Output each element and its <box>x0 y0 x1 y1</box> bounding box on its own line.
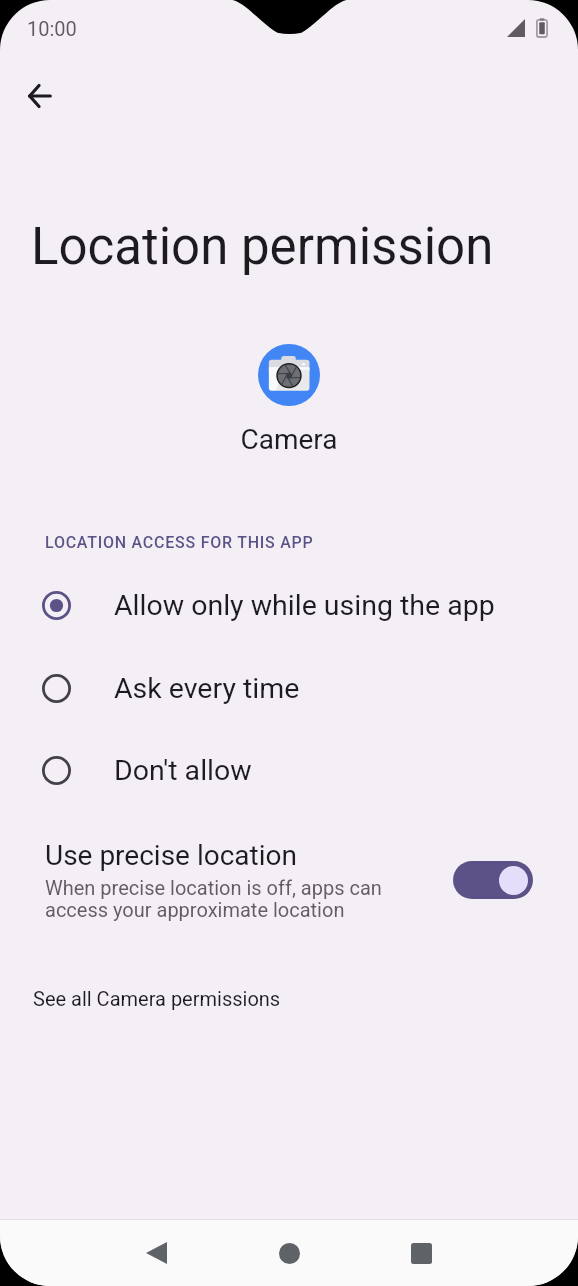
staticText: Allow only while using the app <box>114 589 495 622</box>
button[interactable]: Recent apps <box>376 1220 466 1286</box>
button[interactable]: Use precise location <box>453 861 533 899</box>
button[interactable]: Back <box>111 1220 201 1286</box>
staticText: Ask every time <box>114 672 300 705</box>
button[interactable]: Back <box>12 68 68 124</box>
staticText: LOCATION ACCESS FOR THIS APP <box>45 533 314 552</box>
button[interactable]: See all Camera permissions <box>33 987 281 1010</box>
staticText: Location permission <box>31 217 494 277</box>
staticText: 10:00 <box>27 17 77 40</box>
button[interactable]: Allow only while using the app <box>0 564 578 646</box>
button[interactable]: Use precise location <box>0 839 578 922</box>
staticText: When precise location is off, apps can a… <box>45 876 443 922</box>
staticText: Don't allow <box>114 754 252 787</box>
staticText: Use precise location <box>45 839 297 872</box>
button[interactable]: Home <box>244 1220 334 1286</box>
staticText: Camera <box>0 423 578 456</box>
button[interactable]: Ask every time <box>0 647 578 729</box>
button[interactable]: Don't allow <box>0 729 578 811</box>
